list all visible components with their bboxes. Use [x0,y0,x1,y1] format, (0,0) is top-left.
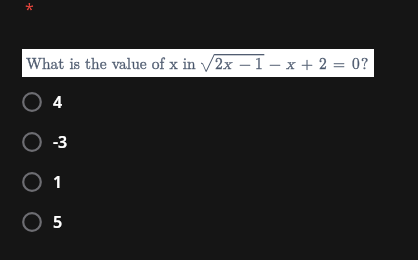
other: Select 5 [22,212,42,232]
staticText: 2 [215,52,223,74]
staticText: 1 [255,52,263,74]
button[interactable]: Select -3 [22,122,142,162]
staticText: 1 [53,171,63,193]
staticText: -3 [53,131,68,153]
staticText: * [25,0,34,20]
staticText: 4 [53,91,63,113]
staticText: = [333,52,346,74]
staticText: What is the value of x in [26,52,196,74]
staticText: 2 [215,52,223,74]
staticText: − [269,52,282,74]
staticText: x [286,52,295,74]
other: Select 1 [22,172,42,192]
staticText: ? [361,52,369,74]
staticText: x [286,52,295,74]
staticText: x [223,52,232,74]
staticText: 1 [255,52,263,74]
button[interactable]: Select 4 [22,82,142,122]
staticText: = [333,52,346,74]
button[interactable]: Select 1 [22,162,142,202]
staticText: 0 [352,52,360,74]
button[interactable]: Select 5 [22,202,142,242]
other: Select -3 [22,132,42,152]
staticText: 0 [352,52,360,74]
staticText: − [239,52,252,74]
staticText: x [223,52,232,74]
staticText: ? [361,52,369,74]
staticText: 2 [319,52,327,74]
staticText: + [301,52,314,74]
staticText: + [301,52,314,74]
staticText: − [239,52,252,74]
staticText: What is the value of x in [26,52,196,74]
staticText: 2 [319,52,327,74]
other: Select 4 [22,92,42,112]
staticText: − [269,52,282,74]
staticText: 5 [53,211,63,233]
